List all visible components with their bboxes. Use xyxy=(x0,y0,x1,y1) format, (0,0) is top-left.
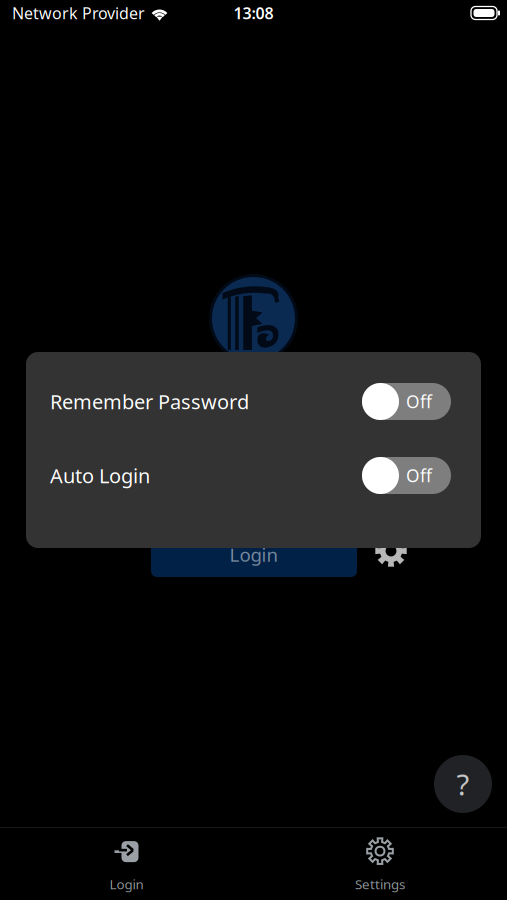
staticText: 13:08 xyxy=(233,2,273,24)
button[interactable]: Help xyxy=(434,755,492,813)
button[interactable]: Off xyxy=(362,383,451,420)
button[interactable]: Off xyxy=(362,457,451,494)
button[interactable]: Login xyxy=(151,535,357,577)
staticText: Off xyxy=(406,464,432,487)
staticText: Settings xyxy=(355,875,405,893)
staticText: Login xyxy=(109,875,143,893)
button[interactable]: Login xyxy=(0,828,253,900)
staticText: Login xyxy=(229,542,278,567)
staticText: Remember Password xyxy=(50,388,249,415)
button[interactable]: Settings xyxy=(253,828,507,900)
staticText: Network Provider xyxy=(12,2,145,24)
staticText: Auto Login xyxy=(50,462,150,489)
staticText: ? xyxy=(456,764,469,803)
staticText: Off xyxy=(406,390,432,413)
button[interactable]: Settings xyxy=(375,535,407,577)
